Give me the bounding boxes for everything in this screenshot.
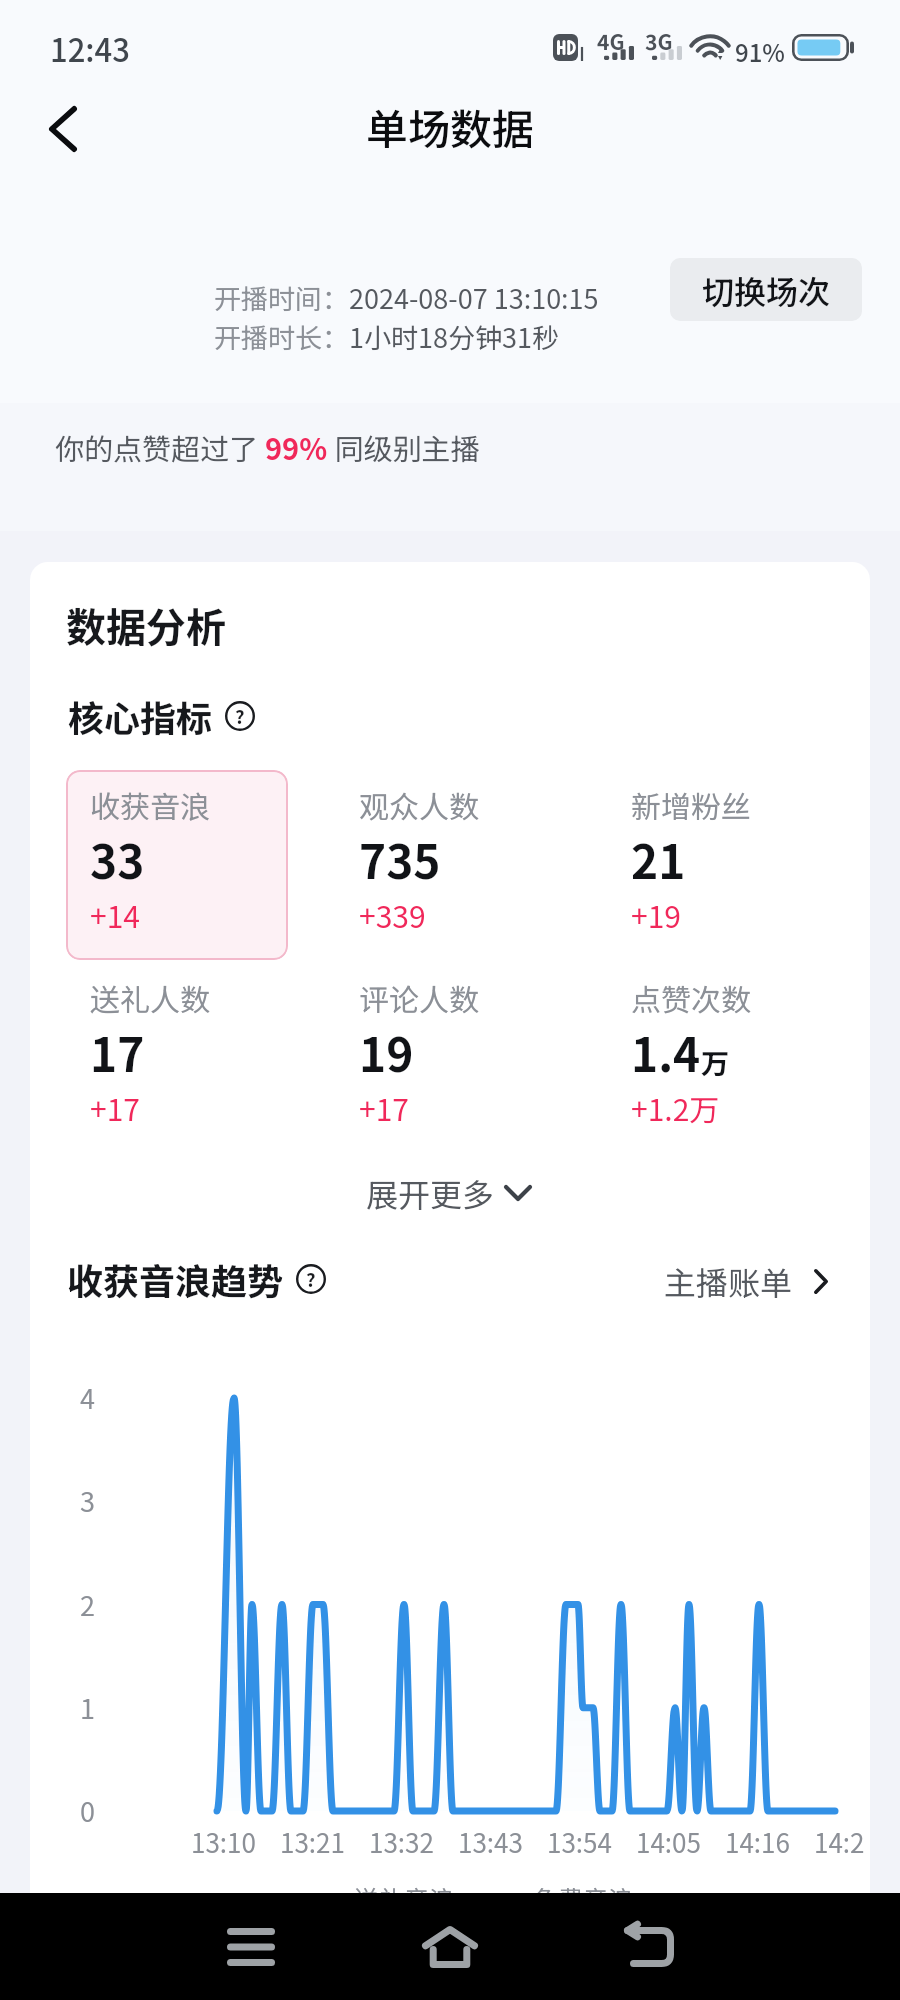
button[interactable]: Home <box>403 1900 497 1994</box>
staticText: 万 <box>701 1042 730 1083</box>
staticText: 评论人数 <box>359 976 479 1019</box>
button[interactable]: 展开更多 <box>358 1162 540 1224</box>
staticText: 送礼音浪 <box>354 1880 455 1893</box>
staticText: 13:43 <box>458 1823 523 1857</box>
button[interactable]: 主播账单 <box>658 1252 834 1310</box>
staticText: 3 <box>80 1481 95 1520</box>
staticText: 14:05 <box>636 1823 701 1857</box>
staticText: 33 <box>90 826 145 893</box>
staticText: ? <box>306 1265 316 1292</box>
staticText: 13:32 <box>369 1823 434 1857</box>
staticText: 点赞次数 <box>631 976 751 1019</box>
staticText: 数据分析 <box>66 596 226 654</box>
staticText: 4 <box>80 1378 95 1417</box>
staticText: 开播时长： <box>214 317 349 356</box>
button[interactable]: Back <box>30 96 96 162</box>
staticText: 13:54 <box>547 1823 612 1857</box>
staticText: 19 <box>359 1019 414 1086</box>
staticText: 同级别主播 <box>328 426 480 468</box>
staticText: 收获音浪趋势 <box>67 1253 284 1305</box>
button[interactable]: 新增粉丝 <box>631 783 870 936</box>
staticText: 切换场次 <box>702 267 831 313</box>
staticText: 14:16 <box>725 1823 790 1857</box>
staticText: 展开更多 <box>366 1170 495 1216</box>
staticText: 收获音浪 <box>90 783 210 826</box>
staticText: 91% <box>735 34 785 69</box>
staticText: 21 <box>631 826 686 893</box>
staticText: 12:43 <box>50 26 130 71</box>
button[interactable]: 观众人数 <box>359 783 599 936</box>
staticText: 3G <box>645 26 673 56</box>
staticText: 2024-08-07 13:10:15 <box>349 278 599 317</box>
staticText: +1.2万 <box>631 1086 720 1129</box>
staticText: 14:27 <box>814 1823 864 1857</box>
staticText: 4G <box>597 26 625 56</box>
staticText: 99% <box>265 426 328 468</box>
button[interactable]: 收获音浪 <box>90 783 330 936</box>
staticText: 主播账单 <box>664 1258 793 1304</box>
button[interactable]: Recent apps <box>204 1900 298 1994</box>
staticText: 单场数据 <box>366 96 535 157</box>
staticText: 13:10 <box>191 1823 256 1857</box>
staticText: 你的点赞超过了 <box>55 426 265 468</box>
staticText: 2 <box>80 1585 95 1624</box>
staticText: +339 <box>359 893 426 936</box>
staticText: ? <box>235 702 245 729</box>
staticText: 1.4 <box>631 1019 701 1086</box>
staticText: 核心指标 <box>68 690 213 742</box>
button[interactable]: 评论人数 <box>359 976 599 1129</box>
button[interactable]: 送礼人数 <box>90 976 330 1129</box>
staticText: 免费音浪 <box>533 1880 634 1893</box>
staticText: 0 <box>80 1791 95 1830</box>
staticText: +17 <box>359 1086 409 1129</box>
staticText: 13:21 <box>280 1823 345 1857</box>
staticText: 开播时间： <box>214 278 349 317</box>
staticText: 1小时18分钟31秒 <box>349 317 559 356</box>
staticText: 新增粉丝 <box>631 783 751 826</box>
button[interactable]: 点赞次数 <box>631 976 870 1129</box>
staticText: 17 <box>90 1019 145 1086</box>
staticText: 观众人数 <box>359 783 479 826</box>
staticText: 1 <box>80 1688 95 1727</box>
staticText: 送礼人数 <box>90 976 210 1019</box>
button[interactable] <box>66 770 288 960</box>
button[interactable]: 切换场次 <box>670 258 862 321</box>
button[interactable]: Back <box>602 1900 696 1994</box>
staticText: +14 <box>90 893 140 936</box>
staticText: +17 <box>90 1086 140 1129</box>
staticText: +19 <box>631 893 681 936</box>
staticText: 735 <box>359 826 441 893</box>
